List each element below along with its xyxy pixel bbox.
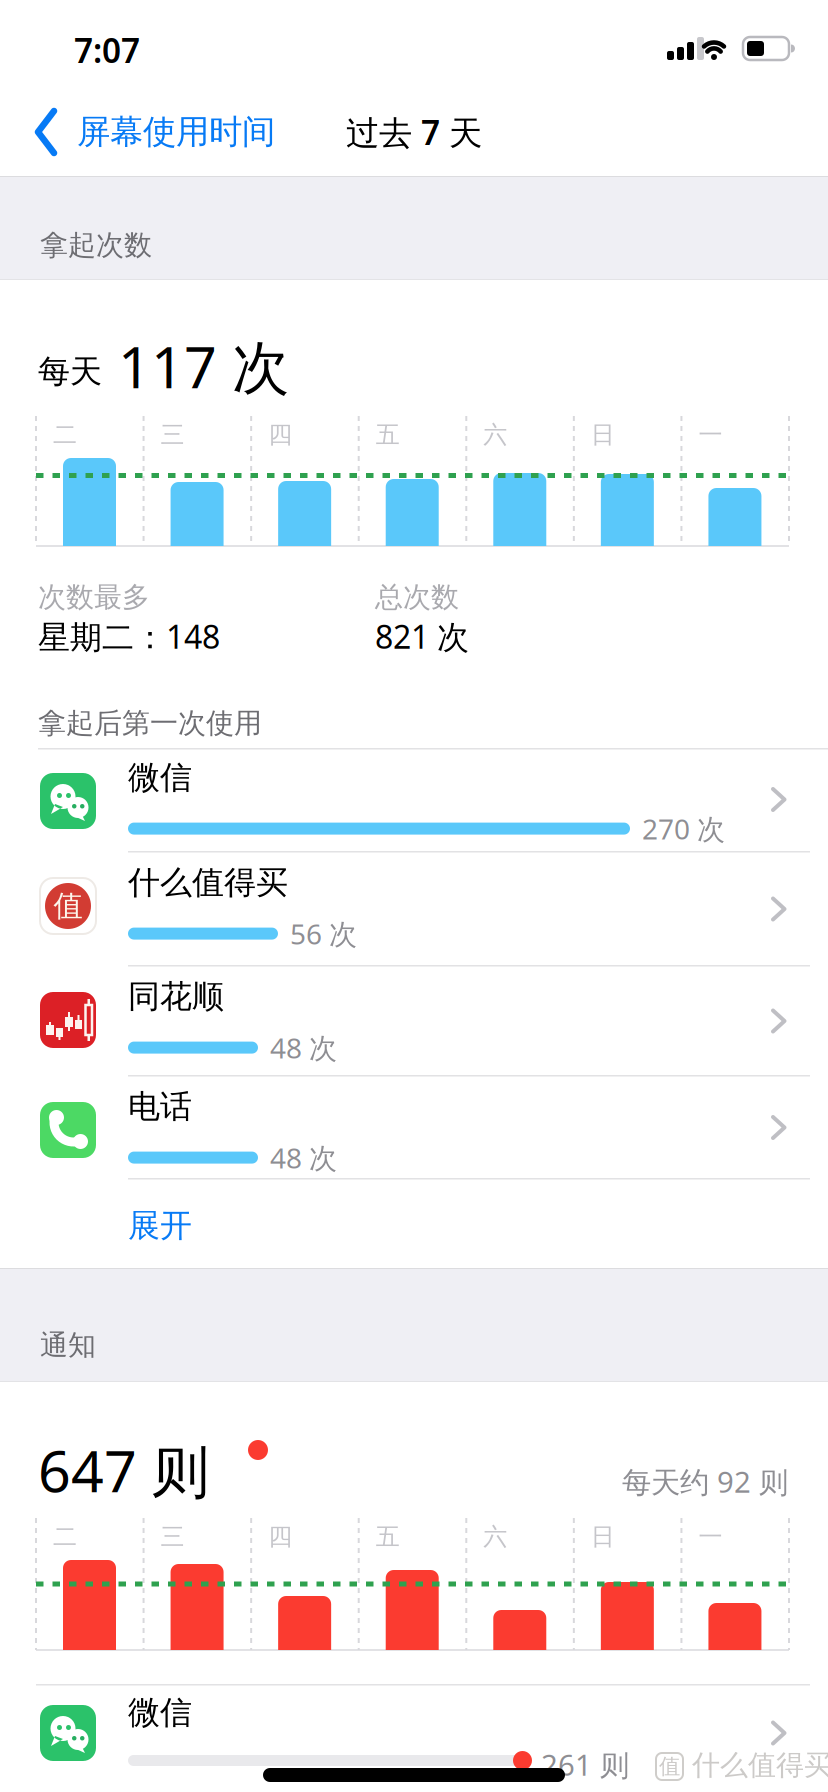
staticText: 117 次 — [118, 328, 289, 404]
staticText: 每天约 92 则 — [622, 1462, 788, 1501]
staticText: 屏幕使用时间 — [77, 111, 275, 152]
staticText: 三 — [161, 1522, 185, 1551]
staticText: 48 次 — [270, 1029, 337, 1066]
button[interactable]: 值 — [0, 853, 828, 965]
staticText: 三 — [161, 420, 185, 449]
staticText: 56 次 — [290, 915, 357, 952]
staticText: 五 — [376, 420, 400, 449]
staticText: 通知 — [40, 1328, 96, 1362]
staticText: 261 则 — [541, 1745, 629, 1784]
staticText: 什么值得买 — [128, 863, 288, 902]
button[interactable]: 微信 — [0, 1685, 828, 1792]
staticText: 270 次 — [642, 810, 725, 847]
staticText: 日 — [591, 1522, 615, 1551]
staticText: 拿起后第一次使用 — [38, 706, 262, 740]
staticText: 拿起次数 — [40, 228, 152, 262]
button[interactable]: 微信 — [0, 748, 828, 851]
staticText: 每天 — [38, 352, 102, 391]
button[interactable]: 同花顺 — [0, 967, 828, 1075]
staticText: 四 — [268, 1522, 292, 1551]
staticText: 微信 — [128, 758, 192, 797]
staticText: 二 — [53, 420, 77, 449]
staticText: 总次数 — [375, 580, 459, 614]
staticText: 次数最多 — [38, 580, 150, 614]
staticText: 微信 — [128, 1693, 192, 1732]
staticText: 电话 — [128, 1087, 192, 1126]
staticText: 一 — [698, 1522, 722, 1551]
staticText: 星期二：148 — [38, 615, 220, 657]
staticText: 二 — [53, 1522, 77, 1551]
staticText: 六 — [483, 1522, 507, 1551]
button[interactable]: 展开 — [0, 1178, 828, 1268]
staticText: 四 — [268, 420, 292, 449]
staticText: 值 — [53, 888, 82, 924]
staticText: 日 — [591, 420, 615, 449]
button[interactable]: 返回 屏幕使用时间 — [34, 88, 275, 176]
staticText: 821 次 — [375, 615, 469, 657]
staticText: 48 次 — [270, 1139, 337, 1176]
staticText: 一 — [698, 420, 722, 449]
staticText: 647 则 — [38, 1432, 209, 1508]
button[interactable]: 电话 — [0, 1077, 828, 1178]
staticText: 过去 7 天 — [346, 110, 482, 154]
staticText: 什么值得买 — [692, 1748, 828, 1782]
staticText: 值 — [659, 1753, 680, 1780]
staticText: 7:07 — [74, 28, 140, 72]
staticText: 同花顺 — [128, 977, 224, 1016]
staticText: 展开 — [128, 1206, 192, 1245]
staticText: 五 — [376, 1522, 400, 1551]
staticText: 六 — [483, 420, 507, 449]
